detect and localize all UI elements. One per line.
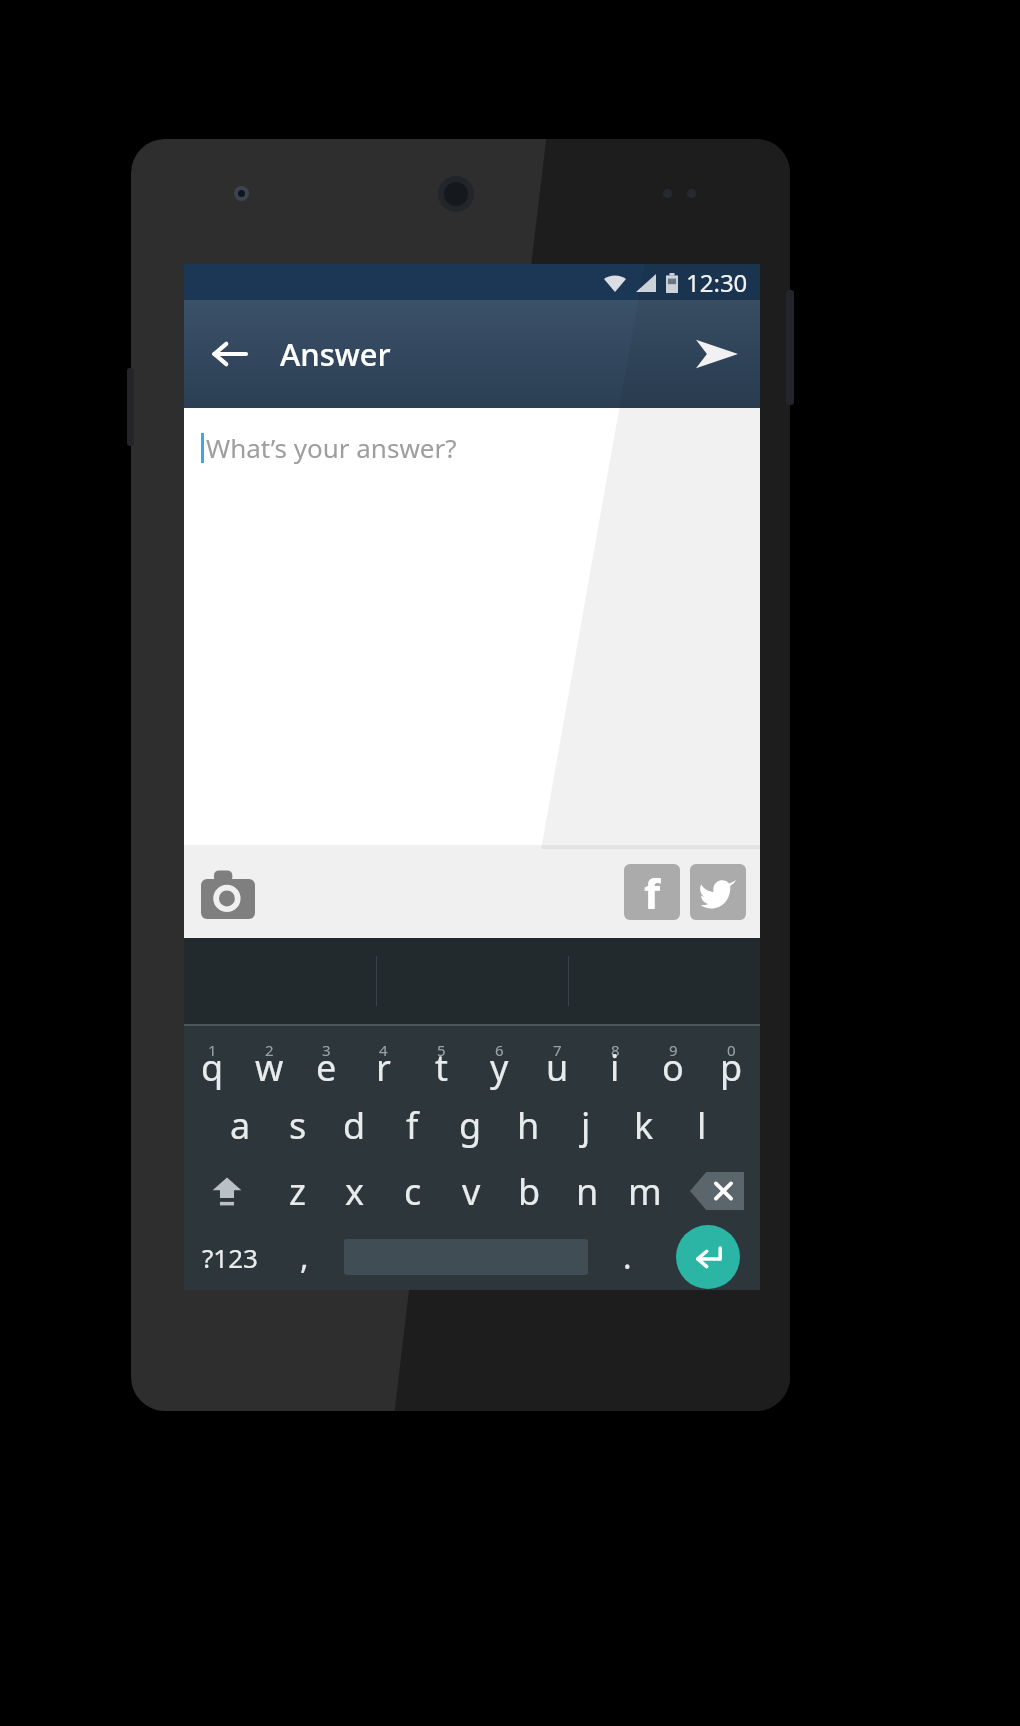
staticText: Answer xyxy=(280,333,391,375)
staticText: n xyxy=(576,1167,599,1216)
button[interactable]: 2 xyxy=(241,1026,298,1092)
button[interactable]: 7 xyxy=(528,1026,586,1092)
button[interactable]: z xyxy=(269,1158,326,1224)
button[interactable]: 3 xyxy=(298,1026,355,1092)
staticText: c xyxy=(404,1167,422,1216)
staticText: , xyxy=(300,1235,309,1279)
button[interactable]: d xyxy=(326,1092,383,1158)
staticText: ?123 xyxy=(202,1240,258,1275)
staticText: 8 xyxy=(611,1040,620,1060)
staticText: z xyxy=(289,1167,306,1216)
button[interactable]: 4 xyxy=(355,1026,412,1092)
staticText: a xyxy=(230,1101,251,1150)
button[interactable]: m xyxy=(616,1158,674,1224)
staticText: 0 xyxy=(727,1040,736,1060)
button[interactable]: Send xyxy=(674,300,760,408)
button[interactable]: Share on Facebook xyxy=(624,864,680,920)
button[interactable]: a xyxy=(212,1092,269,1158)
staticText: i xyxy=(610,1043,620,1092)
staticText: l xyxy=(697,1101,707,1150)
staticText: m xyxy=(628,1167,662,1216)
staticText: What’s your answer? xyxy=(206,430,457,465)
button[interactable]: What’s your answer? xyxy=(184,408,760,845)
button[interactable]: v xyxy=(442,1158,500,1224)
button[interactable]: b xyxy=(500,1158,558,1224)
button[interactable]: 1 xyxy=(184,1026,241,1092)
staticText: 1 xyxy=(208,1040,217,1060)
button[interactable]: Delete xyxy=(674,1158,760,1224)
button[interactable]: 9 xyxy=(644,1026,702,1092)
staticText: 9 xyxy=(669,1040,678,1060)
staticText: v xyxy=(462,1167,481,1216)
button[interactable]: 6 xyxy=(470,1026,528,1092)
staticText: o xyxy=(662,1043,684,1092)
staticText: q xyxy=(201,1043,224,1092)
staticText: s xyxy=(289,1101,307,1150)
button[interactable]: 8 xyxy=(586,1026,644,1092)
button[interactable]: f xyxy=(383,1092,441,1158)
button[interactable]: Space xyxy=(333,1224,598,1290)
button[interactable]: j xyxy=(557,1092,615,1158)
button[interactable]: 5 xyxy=(412,1026,470,1092)
staticText: 12:30 xyxy=(686,266,748,299)
button[interactable]: l xyxy=(673,1092,731,1158)
button[interactable]: 0 xyxy=(702,1026,760,1092)
staticText: 2 xyxy=(265,1040,274,1060)
staticText: f xyxy=(644,864,661,920)
staticText: 7 xyxy=(553,1040,562,1060)
staticText: . xyxy=(623,1235,632,1279)
button[interactable]: x xyxy=(326,1158,384,1224)
staticText: g xyxy=(459,1101,482,1150)
staticText: 4 xyxy=(379,1040,388,1060)
staticText: y xyxy=(490,1043,509,1092)
button[interactable]: . xyxy=(598,1224,656,1290)
button[interactable]: k xyxy=(615,1092,673,1158)
staticText: b xyxy=(518,1167,541,1216)
button[interactable]: c xyxy=(384,1158,442,1224)
staticText: r xyxy=(376,1043,391,1092)
staticText: e xyxy=(316,1043,337,1092)
button[interactable]: Shift xyxy=(184,1158,269,1224)
button[interactable]: Camera xyxy=(198,862,258,922)
button[interactable]: ?123 xyxy=(184,1224,275,1290)
staticText: j xyxy=(581,1101,591,1150)
staticText: w xyxy=(255,1043,284,1092)
staticText: h xyxy=(517,1101,540,1150)
button[interactable]: s xyxy=(269,1092,326,1158)
button[interactable]: g xyxy=(441,1092,499,1158)
staticText: 5 xyxy=(437,1040,446,1060)
staticText: f xyxy=(406,1101,419,1150)
button[interactable]: h xyxy=(499,1092,557,1158)
staticText: d xyxy=(343,1101,366,1150)
staticText: x xyxy=(345,1167,365,1216)
staticText: 3 xyxy=(322,1040,331,1060)
staticText: 6 xyxy=(495,1040,504,1060)
button[interactable]: n xyxy=(558,1158,616,1224)
staticText: t xyxy=(435,1043,448,1092)
button[interactable]: Share on Twitter xyxy=(690,864,746,920)
staticText: k xyxy=(634,1101,654,1150)
staticText: u xyxy=(546,1043,569,1092)
button[interactable]: Enter xyxy=(656,1224,760,1290)
button[interactable]: , xyxy=(275,1224,333,1290)
staticText: p xyxy=(720,1043,743,1092)
button[interactable]: Back xyxy=(192,300,266,408)
